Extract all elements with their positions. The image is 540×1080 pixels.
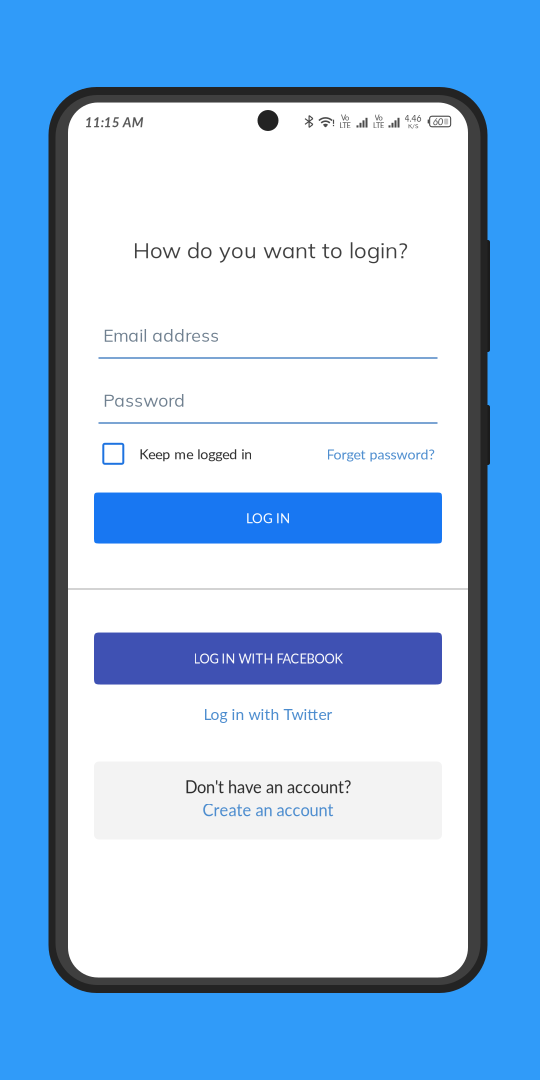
button[interactable]: LOG IN — [94, 492, 442, 543]
button[interactable]: Forget password? — [294, 441, 434, 467]
staticText: 11:15 AM — [85, 114, 144, 130]
staticText: Create an account — [202, 800, 333, 820]
staticText: Log in with Twitter — [203, 705, 332, 723]
staticText: How do you want to login? — [133, 236, 408, 264]
staticText: Don't have an account? — [185, 777, 351, 797]
staticText: 4.46 — [404, 113, 421, 123]
staticText: Vo — [374, 113, 382, 122]
staticText: Vo — [341, 113, 349, 122]
staticText: Keep me logged in — [139, 445, 252, 462]
button[interactable]: Create an account — [178, 798, 358, 822]
staticText: LTE — [373, 121, 384, 130]
staticText: Email address — [103, 324, 219, 346]
staticText: Forget password? — [326, 445, 434, 462]
button[interactable]: LOG IN WITH FACEBOOK — [94, 632, 442, 684]
staticText: Password — [103, 389, 185, 411]
button[interactable]: Keep me logged in — [103, 441, 283, 467]
staticText: 60 — [433, 116, 444, 127]
staticText: LTE — [339, 121, 350, 130]
staticText: LOG IN — [246, 510, 290, 526]
button[interactable]: Log in with Twitter — [143, 698, 393, 730]
staticText: LOG IN WITH FACEBOOK — [193, 651, 342, 666]
staticText: K/S — [408, 122, 418, 130]
